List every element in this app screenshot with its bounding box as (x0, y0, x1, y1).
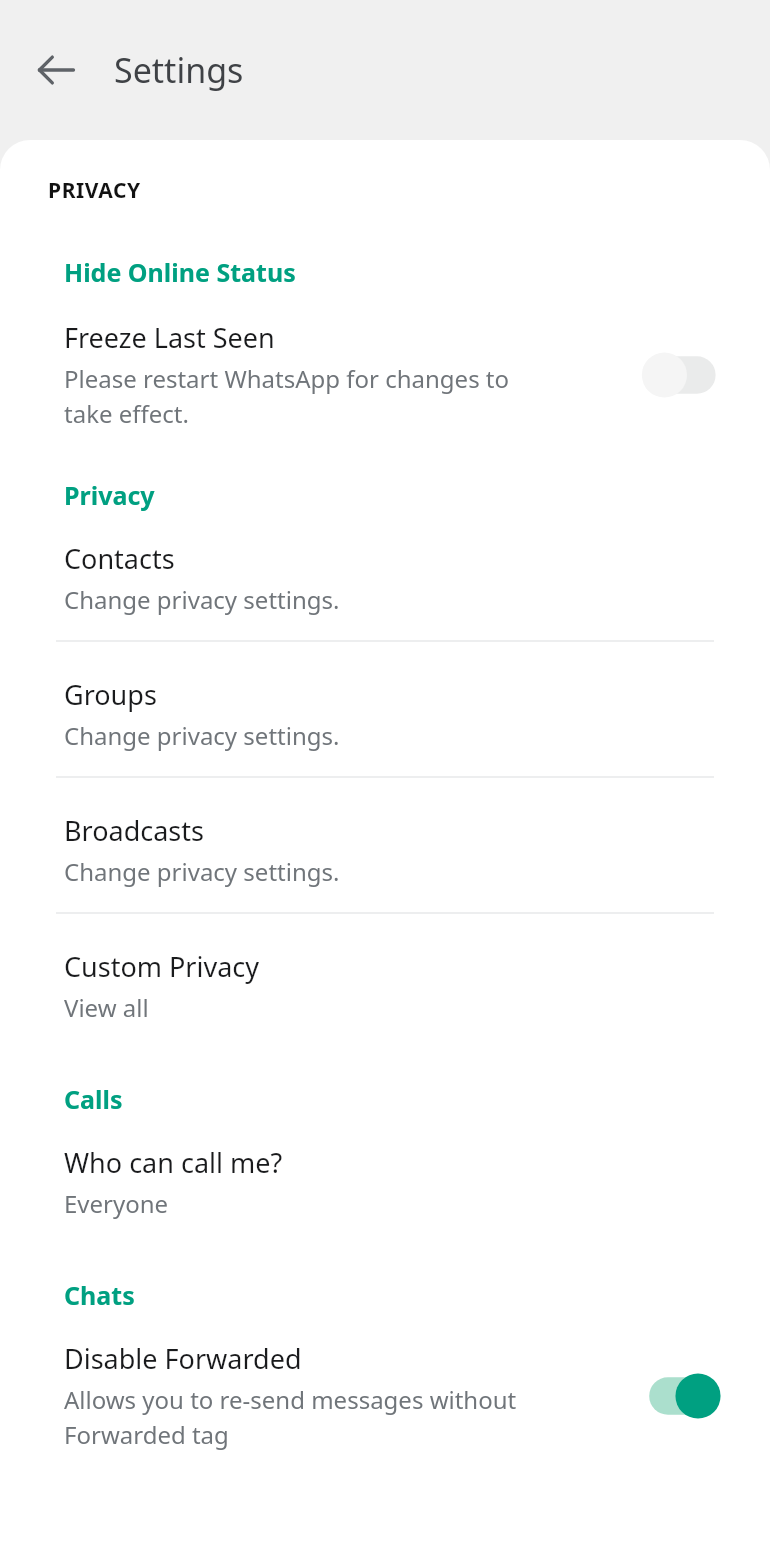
staticText: Freeze Last Seen (64, 319, 275, 356)
button[interactable]: Contacts (0, 540, 770, 616)
button[interactable]: Disable Forwarded (0, 1340, 770, 1451)
button[interactable]: Who can call me? (0, 1144, 770, 1220)
button[interactable]: Toggle on (634, 1361, 730, 1431)
staticText: Who can call me? (64, 1144, 283, 1181)
button[interactable]: Back (24, 38, 88, 102)
staticText: Please restart WhatsApp for changes to t… (64, 362, 510, 430)
button[interactable]: Custom Privacy (0, 948, 770, 1024)
staticText: Contacts (64, 540, 175, 577)
staticText: Broadcasts (64, 812, 204, 849)
staticText: Change privacy settings. (64, 855, 340, 888)
staticText: Custom Privacy (64, 948, 260, 985)
staticText: Change privacy settings. (64, 583, 340, 616)
staticText: Disable Forwarded (64, 1340, 302, 1377)
button[interactable]: Groups (0, 676, 770, 752)
button[interactable]: Toggle off (634, 340, 730, 410)
staticText: PRIVACY (48, 176, 141, 205)
staticText: Allows you to re-send messages without F… (64, 1383, 517, 1451)
staticText: Everyone (64, 1187, 169, 1220)
staticText: Chats (64, 1278, 135, 1312)
staticText: Privacy (64, 478, 155, 512)
button[interactable]: Broadcasts (0, 812, 770, 888)
staticText: Hide Online Status (64, 255, 296, 289)
staticText: Settings (114, 47, 244, 93)
staticText: Groups (64, 676, 157, 713)
staticText: Calls (64, 1082, 123, 1116)
staticText: Change privacy settings. (64, 719, 340, 752)
button[interactable]: Freeze Last Seen (0, 319, 770, 430)
staticText: View all (64, 991, 149, 1024)
